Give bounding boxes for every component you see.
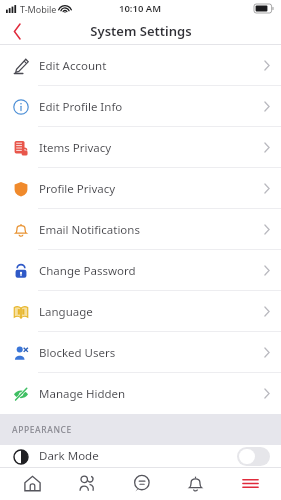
button[interactable]: Dark Mode toggle xyxy=(237,447,270,466)
button[interactable]: Menu xyxy=(227,467,273,500)
staticText: Change Password xyxy=(39,263,136,279)
button[interactable]: Change Password xyxy=(0,250,281,291)
button[interactable]: Profile Privacy xyxy=(0,168,281,209)
button[interactable]: Home xyxy=(9,467,55,500)
staticText: System Settings xyxy=(90,22,192,40)
staticText: Profile Privacy xyxy=(39,181,116,197)
staticText: Edit Profile Info xyxy=(39,99,123,115)
staticText: Manage Hidden xyxy=(39,386,126,402)
staticText: 10:10 AM xyxy=(119,2,162,15)
button[interactable]: Notifications xyxy=(172,467,218,500)
staticText: Language xyxy=(39,304,93,320)
button[interactable]: Email Notifications xyxy=(0,209,281,250)
button[interactable]: Edit Profile Info xyxy=(0,86,281,127)
button[interactable]: Edit Account xyxy=(0,45,281,86)
button[interactable]: Items Privacy xyxy=(0,127,281,168)
staticText: Edit Account xyxy=(39,58,107,74)
button[interactable]: Language xyxy=(0,291,281,332)
staticText: APPEARANCE xyxy=(12,424,72,436)
button[interactable]: Messages xyxy=(118,467,164,500)
staticText: T-Mobile xyxy=(20,3,57,15)
button[interactable]: Blocked Users xyxy=(0,332,281,373)
button[interactable]: Dark Mode xyxy=(0,445,281,467)
button[interactable]: Manage Hidden xyxy=(0,373,281,414)
button[interactable]: People xyxy=(63,467,109,500)
staticText: Blocked Users xyxy=(39,345,116,361)
staticText: Items Privacy xyxy=(39,140,112,156)
staticText: Email Notifications xyxy=(39,222,140,238)
staticText: Dark Mode xyxy=(39,448,99,464)
button[interactable]: Back xyxy=(0,17,34,45)
